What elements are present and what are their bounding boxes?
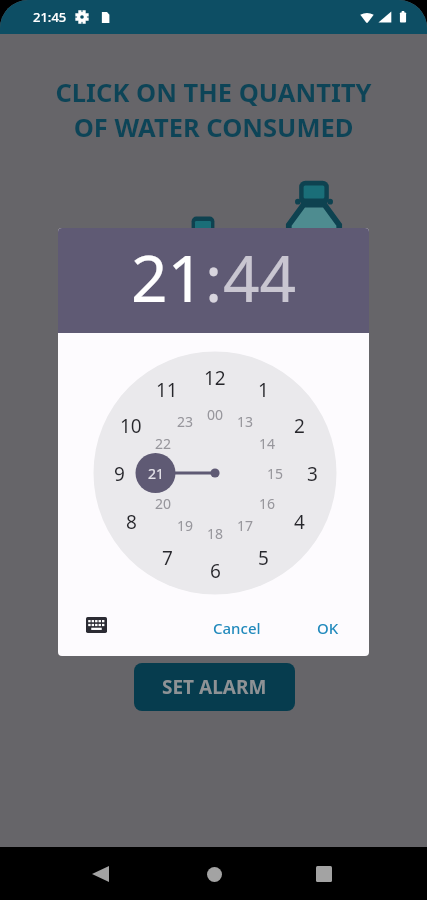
staticText: CLICK ON THE QUANTITY OF WATER CONSUMED [55,75,372,144]
staticText: 5 [258,545,269,569]
staticText: 6 [210,558,221,582]
staticText: 9 [114,461,125,485]
button[interactable]: Cancel [203,610,271,646]
staticText: 11 [156,377,178,401]
button[interactable]: 21 [131,234,205,321]
staticText: 17 [237,516,254,535]
staticText: Cancel [213,618,261,638]
staticText: 00 [207,405,224,424]
staticText: 21 [148,464,165,483]
staticText: 16 [259,494,276,513]
staticText: 13 [237,412,254,431]
button[interactable]: Switch to text input [78,607,114,643]
staticText: OK [317,618,339,638]
staticText: 4 [294,509,305,533]
staticText: 20 [155,494,172,513]
staticText: 14 [259,434,276,453]
staticText: 7 [162,545,173,569]
staticText: 21:45 [33,8,67,26]
staticText: 12 [204,365,226,389]
button[interactable]: Back [80,854,120,894]
staticText: 8 [126,509,137,533]
staticText: 22 [155,434,172,453]
staticText: 18 [207,524,224,543]
staticText: SET ALARM [162,674,267,700]
button[interactable]: SET ALARM [134,663,295,711]
staticText: 10 [120,413,142,437]
staticText: 2 [294,413,305,437]
button[interactable]: OK [307,610,349,646]
staticText: 23 [177,412,194,431]
staticText: 3 [307,461,318,485]
staticText: : [205,234,223,321]
button[interactable]: Home [194,854,234,894]
button[interactable]: Recents [304,854,344,894]
staticText: 15 [267,464,284,483]
staticText: 19 [177,516,194,535]
button[interactable]: 44 [223,234,297,321]
staticText: 1 [258,377,269,401]
